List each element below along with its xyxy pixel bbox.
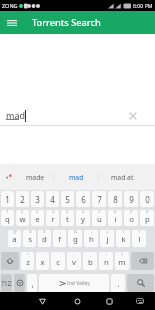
staticText: 5 (65, 194, 70, 205)
staticText: z (26, 257, 30, 268)
staticText: ) (139, 230, 141, 235)
button[interactable]: 0 (140, 191, 154, 207)
button[interactable]: # (23, 230, 36, 247)
button[interactable]: 0 (140, 210, 154, 226)
staticText: ; (90, 252, 92, 258)
button[interactable]: & (68, 230, 82, 247)
button[interactable]: + (100, 230, 114, 247)
button[interactable]: Search (127, 274, 154, 292)
button[interactable]: - (84, 230, 98, 247)
staticText: h (89, 234, 94, 245)
button[interactable]: 6 (76, 210, 90, 226)
staticText: 3 (36, 210, 39, 215)
staticText: ' (58, 252, 59, 258)
button[interactable]: 2 (16, 191, 29, 207)
staticText: y (81, 214, 85, 224)
staticText: 8 (113, 194, 118, 205)
button[interactable]: 5 (61, 191, 74, 207)
staticText: 7 (97, 194, 102, 205)
button[interactable]: mad (54, 164, 98, 190)
button[interactable]: 4 (46, 210, 59, 226)
staticText: 2 (20, 194, 25, 205)
button[interactable]: 3 (31, 191, 44, 207)
button[interactable]: Home (70, 294, 84, 308)
staticText: k (121, 234, 126, 245)
button[interactable]: 9 (124, 191, 138, 207)
button[interactable]: _ (53, 230, 66, 247)
button[interactable]: mad (0, 106, 155, 125)
staticText: 0 (146, 210, 149, 215)
staticText: x (40, 257, 45, 268)
staticText: l (138, 234, 141, 245)
button[interactable]: 2 (16, 210, 29, 226)
staticText: u (97, 214, 102, 224)
button[interactable]: , (27, 274, 37, 292)
staticText: r (51, 214, 55, 224)
staticText: 6 (82, 210, 85, 215)
button[interactable]: Open navigation menu (7, 18, 17, 28)
staticText: # (29, 230, 32, 235)
button[interactable]: Clear search (125, 108, 141, 124)
staticText: : (73, 252, 75, 258)
button[interactable]: : (67, 252, 81, 270)
staticText: _ (59, 230, 61, 235)
button[interactable]: Shift (1, 252, 19, 270)
button[interactable]: 7 (92, 210, 106, 226)
staticText: 6:00 PM (133, 2, 153, 9)
button[interactable]: ' (51, 252, 65, 270)
button[interactable]: 4 (46, 191, 59, 207)
button[interactable]: 7 (92, 191, 106, 207)
staticText: p (145, 214, 150, 224)
button[interactable]: ( (116, 230, 130, 247)
staticText: Torrents Search (32, 16, 101, 29)
button[interactable]: ) (132, 230, 146, 247)
staticText: c (56, 257, 60, 268)
staticText: - (91, 230, 93, 235)
staticText: f (58, 234, 61, 245)
button[interactable]: ; (83, 252, 97, 270)
button[interactable]: ? (115, 252, 129, 270)
button[interactable]: @ (8, 230, 21, 247)
staticText: b (88, 257, 93, 268)
button[interactable]: 6 (76, 191, 90, 207)
staticText: @ (13, 230, 17, 235)
staticText: g (73, 234, 78, 245)
button[interactable]: 5 (61, 210, 74, 226)
button[interactable]: 1 (1, 210, 14, 226)
staticText: mad at (111, 173, 134, 182)
button[interactable]: Emoji suggestions (0, 164, 18, 190)
staticText: j (106, 234, 109, 245)
button[interactable]: Space (39, 274, 109, 292)
staticText: + (106, 230, 109, 235)
button[interactable]: 8 (108, 191, 122, 207)
staticText: 8 (114, 210, 117, 215)
staticText: ! (106, 252, 108, 258)
button[interactable]: Recent apps (102, 294, 116, 308)
button[interactable]: " (36, 252, 49, 270)
button[interactable]: ?123 (1, 274, 12, 292)
button[interactable]: Backspace (131, 252, 154, 270)
button[interactable]: mad at (99, 164, 145, 190)
button[interactable]: 9 (124, 210, 138, 226)
staticText: n (104, 257, 109, 268)
button[interactable]: 1 (1, 191, 14, 207)
staticText: Ind Valley (67, 280, 90, 287)
button[interactable]: Back (35, 294, 49, 308)
staticText: 2 (21, 210, 24, 215)
button[interactable]: 8 (108, 210, 122, 226)
button[interactable]: Hide keyboard (133, 294, 147, 308)
staticText: made (26, 173, 45, 182)
staticText: mad (69, 173, 84, 182)
button[interactable]: * (21, 252, 34, 270)
staticText: 5 (66, 210, 69, 215)
button[interactable]: $ (38, 230, 51, 247)
staticText: ?123 (1, 279, 12, 287)
button[interactable]: . (111, 274, 125, 292)
button[interactable]: made (18, 164, 53, 190)
button[interactable]: 3 (31, 210, 44, 226)
button[interactable]: Emoji (14, 274, 25, 292)
staticText: & (74, 230, 78, 235)
staticText: 6 (81, 194, 86, 205)
button[interactable]: ! (99, 252, 113, 270)
staticText: 7 (98, 210, 101, 215)
